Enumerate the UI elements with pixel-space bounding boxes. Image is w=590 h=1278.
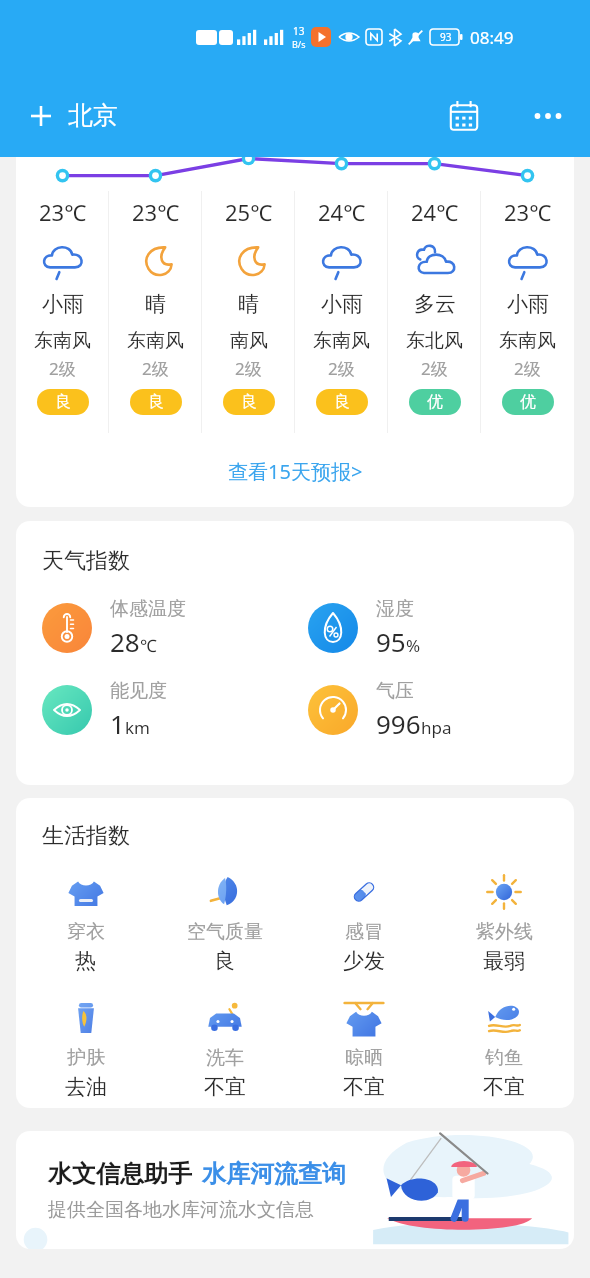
button[interactable]: Calendar bbox=[442, 94, 486, 138]
staticText: 不宜 bbox=[483, 1074, 525, 1100]
staticText: 东南风 bbox=[34, 329, 91, 353]
button[interactable]: 气压 bbox=[308, 679, 574, 741]
staticText: 去油 bbox=[65, 1074, 107, 1100]
staticText: % bbox=[406, 634, 421, 657]
staticText: 穿衣 bbox=[67, 920, 105, 944]
staticText: 提供全国各地水库河流水文信息 bbox=[48, 1198, 314, 1222]
button[interactable]: More options bbox=[526, 94, 570, 138]
staticText: 良 bbox=[55, 392, 71, 412]
staticText: hpa bbox=[421, 716, 452, 739]
staticText: 东南风 bbox=[313, 329, 370, 353]
staticText: 08:49 bbox=[470, 26, 514, 49]
staticText: 不宜 bbox=[343, 1074, 385, 1100]
staticText: 湿度 bbox=[376, 597, 414, 621]
staticText: 水库河流查询 bbox=[202, 1159, 346, 1189]
staticText: 空气质量 bbox=[187, 920, 263, 944]
staticText: 多云 bbox=[414, 291, 456, 317]
staticText: 1 bbox=[110, 706, 125, 741]
staticText: 天气指数 bbox=[42, 547, 130, 575]
staticText: 23℃ bbox=[504, 197, 552, 227]
staticText: 洗车 bbox=[206, 1046, 244, 1070]
staticText: 23℃ bbox=[39, 197, 87, 227]
staticText: 钓鱼 bbox=[485, 1046, 523, 1070]
button[interactable]: 查看15天预报> bbox=[16, 435, 574, 507]
staticText: 2级 bbox=[514, 357, 541, 380]
staticText: 93 bbox=[440, 30, 452, 44]
staticText: 2级 bbox=[328, 357, 355, 380]
button[interactable]: 钓鱼 bbox=[434, 992, 574, 1104]
staticText: 28 bbox=[110, 624, 140, 659]
button[interactable]: 洗车 bbox=[155, 992, 294, 1104]
staticText: 良 bbox=[241, 392, 257, 412]
staticText: 紫外线 bbox=[476, 920, 533, 944]
staticText: 东北风 bbox=[406, 329, 463, 353]
staticText: 2级 bbox=[142, 357, 169, 380]
staticText: 996 bbox=[376, 706, 421, 741]
staticText: 2级 bbox=[421, 357, 448, 380]
button[interactable]: 穿衣 bbox=[16, 866, 155, 978]
button[interactable]: 体感温度 bbox=[42, 597, 308, 659]
button[interactable]: 湿度 bbox=[308, 597, 574, 659]
staticText: 感冒 bbox=[345, 920, 383, 944]
staticText: 25℃ bbox=[225, 197, 273, 227]
staticText: 良 bbox=[148, 392, 164, 412]
staticText: 热 bbox=[75, 948, 96, 974]
staticText: 良 bbox=[214, 948, 235, 974]
staticText: 护肤 bbox=[67, 1046, 105, 1070]
staticText: 最弱 bbox=[483, 948, 525, 974]
staticText: 13 bbox=[293, 24, 305, 38]
staticText: 晾晒 bbox=[345, 1046, 383, 1070]
staticText: 查看15天预报> bbox=[228, 458, 363, 485]
staticText: km bbox=[125, 716, 150, 739]
button[interactable]: 感冒 bbox=[294, 866, 434, 978]
staticText: 少发 bbox=[343, 948, 385, 974]
staticText: 优 bbox=[427, 392, 443, 412]
staticText: 小雨 bbox=[321, 291, 363, 317]
button[interactable]: 水文信息助手 bbox=[16, 1131, 574, 1249]
staticText: 南风 bbox=[230, 329, 268, 353]
staticText: 气压 bbox=[376, 679, 414, 703]
staticText: 水文信息助手 bbox=[48, 1159, 192, 1189]
staticText: 23℃ bbox=[132, 197, 180, 227]
staticText: 优 bbox=[520, 392, 536, 412]
staticText: 东南风 bbox=[127, 329, 184, 353]
staticText: 晴 bbox=[238, 291, 259, 317]
staticText: 晴 bbox=[145, 291, 166, 317]
staticText: 北京 bbox=[68, 100, 118, 131]
button[interactable]: 晾晒 bbox=[294, 992, 434, 1104]
staticText: 2级 bbox=[235, 357, 262, 380]
staticText: ℃ bbox=[140, 634, 157, 657]
staticText: 能见度 bbox=[110, 679, 167, 703]
button[interactable]: 北京 bbox=[30, 100, 118, 131]
staticText: 95 bbox=[376, 624, 406, 659]
staticText: 良 bbox=[334, 392, 350, 412]
button[interactable]: 紫外线 bbox=[434, 866, 574, 978]
staticText: 24℃ bbox=[318, 197, 366, 227]
staticText: 东南风 bbox=[499, 329, 556, 353]
button[interactable]: 空气质量 bbox=[155, 866, 294, 978]
staticText: 小雨 bbox=[42, 291, 84, 317]
button[interactable]: 护肤 bbox=[16, 992, 155, 1104]
staticText: 2级 bbox=[49, 357, 76, 380]
staticText: 24℃ bbox=[411, 197, 459, 227]
button[interactable]: 能见度 bbox=[42, 679, 308, 741]
staticText: B/s bbox=[292, 38, 306, 50]
staticText: 小雨 bbox=[507, 291, 549, 317]
staticText: 不宜 bbox=[204, 1074, 246, 1100]
staticText: 生活指数 bbox=[42, 822, 130, 850]
staticText: 体感温度 bbox=[110, 597, 186, 621]
